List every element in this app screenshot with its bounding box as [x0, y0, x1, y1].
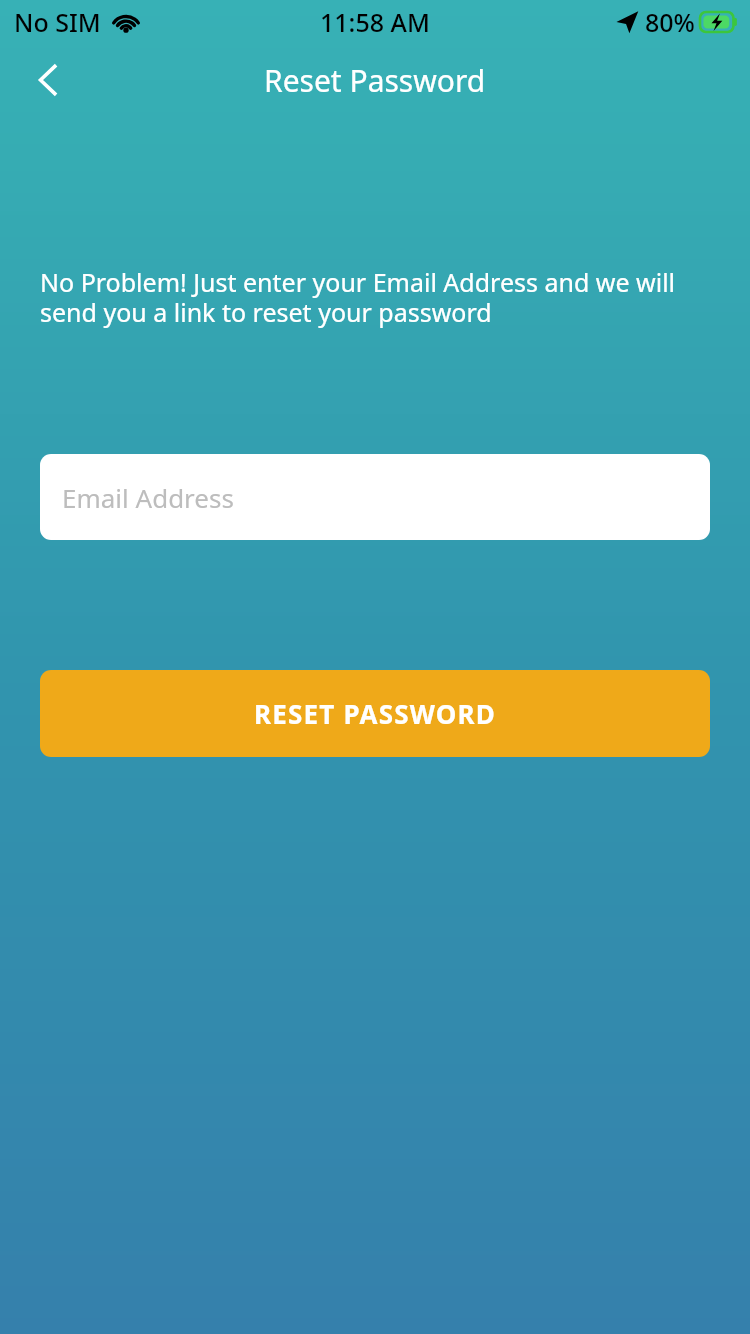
staticText: No SIM — [14, 5, 101, 39]
button[interactable]: RESET PASSWORD — [40, 670, 710, 757]
staticText: Reset Password — [264, 60, 486, 101]
staticText: 80% — [645, 5, 695, 39]
staticText: RESET PASSWORD — [254, 696, 497, 731]
staticText: Email Address — [62, 480, 234, 515]
staticText: No Problem! Just enter your Email Addres… — [40, 265, 710, 330]
staticText: 11:58 AM — [320, 5, 430, 39]
button[interactable]: Email Address — [40, 454, 710, 540]
button[interactable]: Back — [22, 54, 74, 106]
